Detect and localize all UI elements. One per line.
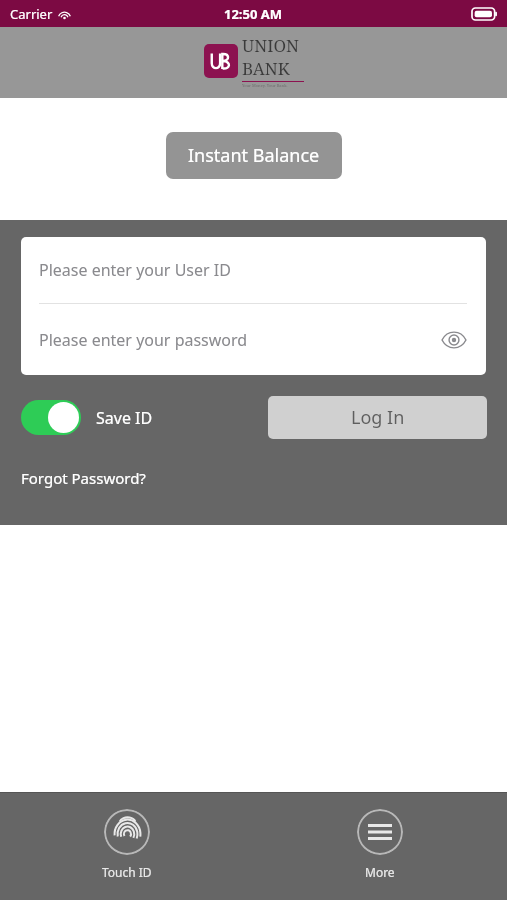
staticText: More xyxy=(365,864,395,880)
staticText: Your Money. Your Bank. xyxy=(242,83,288,88)
button[interactable]: More xyxy=(341,807,419,882)
staticText: Touch ID xyxy=(102,864,152,880)
button[interactable]: Please enter your password xyxy=(21,304,486,375)
button[interactable]: Forgot Password? xyxy=(21,468,146,488)
button[interactable]: Log In xyxy=(268,396,487,439)
staticText: UNION xyxy=(242,34,299,57)
staticText: Please enter your password xyxy=(39,329,248,351)
button[interactable]: Touch ID xyxy=(86,807,168,882)
staticText: Log In xyxy=(351,405,405,430)
staticText: Please enter your User ID xyxy=(39,259,231,281)
staticText: Forgot Password? xyxy=(21,468,146,488)
button[interactable]: Please enter your User ID xyxy=(21,237,486,303)
button[interactable]: Instant Balance xyxy=(166,132,342,179)
staticText: BANK xyxy=(242,57,290,80)
staticText: Carrier xyxy=(10,5,53,23)
staticText: Instant Balance xyxy=(188,143,320,168)
staticText: 12:50 AM xyxy=(224,5,283,23)
staticText: Save ID xyxy=(96,407,153,429)
button[interactable]: Save ID xyxy=(21,400,153,435)
button[interactable]: Show password xyxy=(437,323,471,357)
